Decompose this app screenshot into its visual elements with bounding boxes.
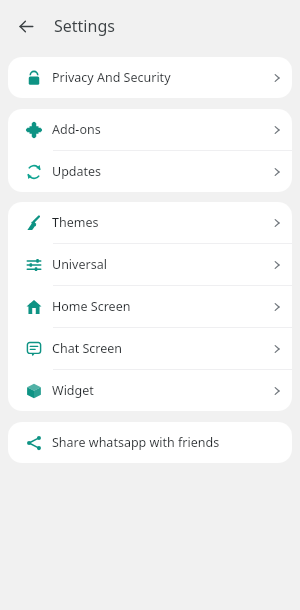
button[interactable]: Home Screen <box>8 286 292 327</box>
staticText: Updates <box>52 163 102 180</box>
staticText: Share whatsapp with friends <box>52 434 220 451</box>
staticText: Themes <box>52 214 99 231</box>
button[interactable]: Themes <box>8 202 292 243</box>
staticText: Add-ons <box>52 121 101 138</box>
button[interactable]: Chat Screen <box>8 328 292 369</box>
staticText: Universal <box>52 256 107 273</box>
button[interactable]: Privacy And Security <box>8 57 292 98</box>
staticText: Chat Screen <box>52 340 123 357</box>
button[interactable]: Widget <box>8 370 292 411</box>
button[interactable]: Back <box>15 15 37 37</box>
button[interactable]: Universal <box>8 244 292 285</box>
button[interactable]: Add-ons <box>8 109 292 150</box>
staticText: Settings <box>54 15 115 37</box>
staticText: Privacy And Security <box>52 69 171 86</box>
button[interactable]: Share whatsapp with friends <box>8 422 292 463</box>
staticText: Home Screen <box>52 298 131 315</box>
staticText: Widget <box>52 382 94 399</box>
button[interactable]: Updates <box>8 151 292 192</box>
